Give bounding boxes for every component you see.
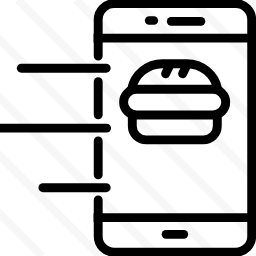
button[interactable]: Fast food delivery bbox=[0, 0, 256, 256]
